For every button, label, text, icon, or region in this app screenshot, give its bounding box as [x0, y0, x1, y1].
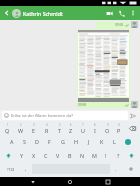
staticText: 7	[82, 123, 84, 127]
button[interactable]: Call	[115, 6, 127, 20]
staticText: K	[100, 138, 104, 145]
staticText: 4	[46, 123, 48, 127]
staticText: D	[35, 138, 39, 145]
button[interactable]: Settings	[122, 162, 139, 176]
button[interactable]: N	[76, 148, 88, 162]
button[interactable]: 3	[27, 122, 40, 135]
button[interactable]: ?	[112, 148, 124, 162]
staticText: H	[74, 138, 78, 145]
button[interactable]: 7	[77, 122, 89, 135]
staticText: O	[105, 127, 110, 134]
staticText: ,	[25, 166, 27, 172]
button[interactable]: 09:58	[77, 29, 130, 108]
staticText: J	[88, 138, 90, 145]
button[interactable]: 2	[14, 122, 27, 135]
staticText: 2	[20, 123, 22, 127]
button[interactable]: 8	[89, 122, 101, 135]
button[interactable]: F	[43, 135, 56, 148]
staticText: R	[45, 127, 49, 134]
staticText: I	[94, 127, 96, 134]
button[interactable]: X	[28, 148, 40, 162]
staticText: 8	[94, 123, 96, 127]
button[interactable]: Back	[28, 177, 38, 186]
staticText: 09:58	[78, 103, 87, 107]
staticText: S	[23, 138, 26, 145]
button[interactable]: Y	[16, 148, 28, 162]
button[interactable]: Home	[65, 177, 75, 186]
button[interactable]: More options	[127, 6, 139, 20]
staticText: C	[44, 152, 48, 159]
staticText: M	[92, 152, 97, 159]
staticText: 09:58	[115, 23, 124, 27]
button[interactable]: H	[69, 135, 82, 148]
staticText: 6	[70, 123, 72, 127]
staticText: Q	[5, 127, 10, 134]
staticText: 9	[107, 123, 109, 127]
button[interactable]: 5	[53, 122, 65, 135]
staticText: X	[32, 152, 36, 159]
button[interactable]: B	[64, 148, 76, 162]
button[interactable]: K	[95, 135, 108, 148]
button[interactable]: Shift	[1, 148, 16, 162]
button[interactable]: 1	[1, 122, 14, 135]
button[interactable]: M	[88, 148, 100, 162]
staticText: B	[68, 152, 72, 159]
button[interactable]: A	[6, 135, 18, 148]
button[interactable]: ,	[20, 162, 32, 176]
button[interactable]: Recent apps	[103, 177, 113, 186]
staticText: T	[58, 127, 61, 134]
staticText: ?	[117, 152, 120, 159]
staticText: U	[81, 127, 85, 134]
staticText: F	[48, 138, 51, 145]
staticText: 5	[59, 123, 61, 127]
button[interactable]: S	[18, 135, 30, 148]
staticText: E	[32, 127, 35, 134]
button[interactable]: Kathrin Schmidt	[23, 10, 103, 17]
staticText: A	[10, 138, 14, 145]
button[interactable]: Erika ist der Mann kommen da?	[2, 111, 128, 120]
button[interactable]: 4	[40, 122, 53, 135]
button[interactable]: Backspace	[125, 122, 139, 135]
button[interactable]: 6	[65, 122, 77, 135]
staticText: Y	[20, 152, 24, 159]
button[interactable]: L	[108, 135, 121, 148]
staticText: P	[117, 127, 121, 134]
button[interactable]: Send	[128, 111, 138, 120]
button[interactable]: .	[110, 162, 122, 176]
staticText: V	[56, 152, 60, 159]
staticText: .	[115, 166, 117, 172]
staticText: !	[105, 152, 107, 159]
button[interactable]: 09:58	[96, 22, 130, 28]
staticText: Erika ist der Mann kommen da?	[11, 113, 74, 119]
button[interactable]: !	[100, 148, 112, 162]
staticText: L	[113, 138, 116, 145]
button[interactable]: V	[52, 148, 64, 162]
staticText: Z	[69, 127, 73, 134]
staticText: 0	[118, 123, 120, 127]
button[interactable]: C	[40, 148, 52, 162]
staticText: Kathrin Schmidt	[23, 10, 63, 17]
button[interactable]: 0	[113, 122, 125, 135]
button[interactable]: D	[30, 135, 43, 148]
button[interactable]: Enter	[121, 135, 135, 148]
staticText: W	[18, 127, 24, 134]
button[interactable]: 9	[101, 122, 113, 135]
button[interactable]: ?123	[1, 162, 20, 176]
staticText: 1	[7, 123, 9, 127]
button[interactable]: J	[82, 135, 95, 148]
staticText: ?123	[7, 167, 15, 172]
staticText: G	[61, 138, 65, 145]
staticText: N	[80, 152, 85, 159]
button[interactable]: Back	[2, 8, 12, 18]
button[interactable]: Shift	[124, 148, 139, 162]
button[interactable]: Video call	[103, 6, 115, 20]
staticText: 3	[33, 123, 35, 127]
button[interactable]: G	[56, 135, 69, 148]
